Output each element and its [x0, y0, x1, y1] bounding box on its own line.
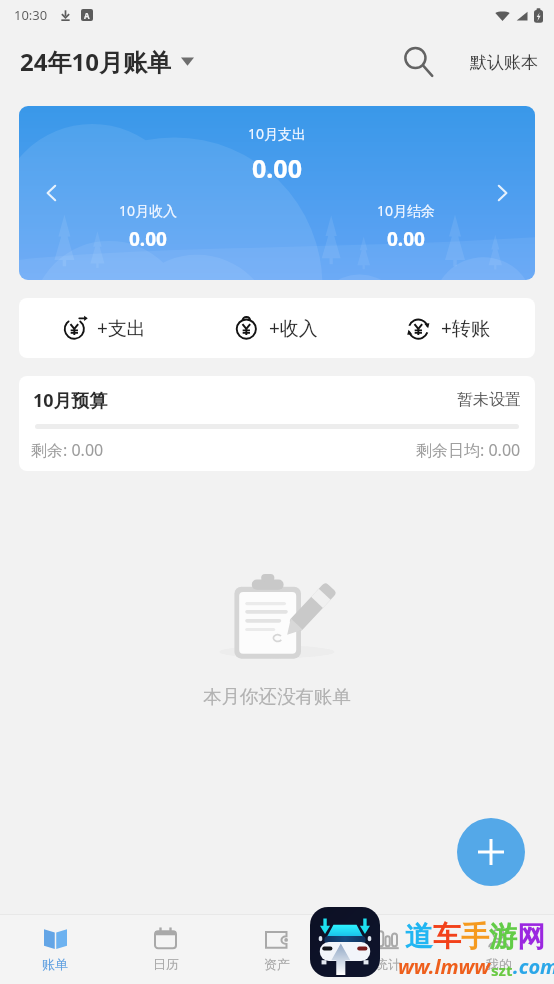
staticText: 10月收入 — [119, 201, 178, 220]
staticText: 账单 — [42, 956, 68, 972]
button[interactable]: +转账 — [363, 298, 535, 358]
staticText: 网 — [517, 919, 545, 954]
button[interactable]: 资产 — [221, 915, 332, 984]
staticText: +收入 — [269, 315, 318, 341]
button[interactable]: Previous month — [32, 173, 72, 213]
staticText: 10月结余 — [377, 201, 436, 220]
button[interactable]: Search — [396, 38, 444, 86]
button[interactable]: +支出 — [19, 298, 191, 358]
staticText: 剩余: 0.00 — [31, 439, 104, 461]
staticText: 统计 — [375, 956, 401, 972]
staticText: 资产 — [264, 956, 290, 972]
staticText: A — [84, 10, 90, 21]
staticText: 车 — [433, 919, 461, 954]
staticText: 0.00 — [252, 151, 302, 185]
button[interactable]: 我的 — [443, 915, 554, 984]
staticText: 0.00 — [387, 226, 425, 252]
staticText: 默认账本 — [470, 52, 538, 73]
staticText: 日历 — [153, 956, 179, 972]
staticText: 游 — [489, 919, 517, 954]
staticText: 10月预算 — [33, 388, 108, 413]
staticText: 我的 — [486, 956, 512, 972]
button[interactable]: 24年10月账单 — [18, 39, 196, 84]
staticText: 道 — [405, 919, 433, 954]
staticText: +支出 — [97, 315, 146, 341]
button[interactable]: Next month — [482, 173, 522, 213]
staticText: 手 — [461, 919, 489, 954]
button[interactable]: 10月预算 — [19, 376, 535, 471]
staticText: 10:30 — [14, 6, 48, 24]
staticText: .com — [513, 953, 554, 980]
button[interactable]: 10月支出 — [19, 106, 535, 280]
button[interactable]: 账单 — [0, 915, 110, 984]
staticText: 暂未设置 — [457, 390, 521, 410]
staticText: 0.00 — [129, 226, 167, 252]
button[interactable]: 日历 — [110, 915, 221, 984]
button[interactable]: 统计 — [332, 915, 443, 984]
button[interactable]: 默认账本 — [469, 42, 539, 83]
staticText: 本月你还没有账单 — [203, 685, 351, 708]
button[interactable]: +收入 — [191, 298, 363, 358]
staticText: 10月支出 — [248, 124, 307, 143]
staticText: szt — [491, 960, 513, 980]
staticText: 剩余日均: 0.00 — [416, 439, 521, 461]
staticText: ww.lmww — [398, 953, 491, 980]
button[interactable]: Add record — [457, 818, 525, 886]
staticText: +转账 — [441, 315, 490, 341]
staticText: 24年10月账单 — [20, 45, 171, 78]
